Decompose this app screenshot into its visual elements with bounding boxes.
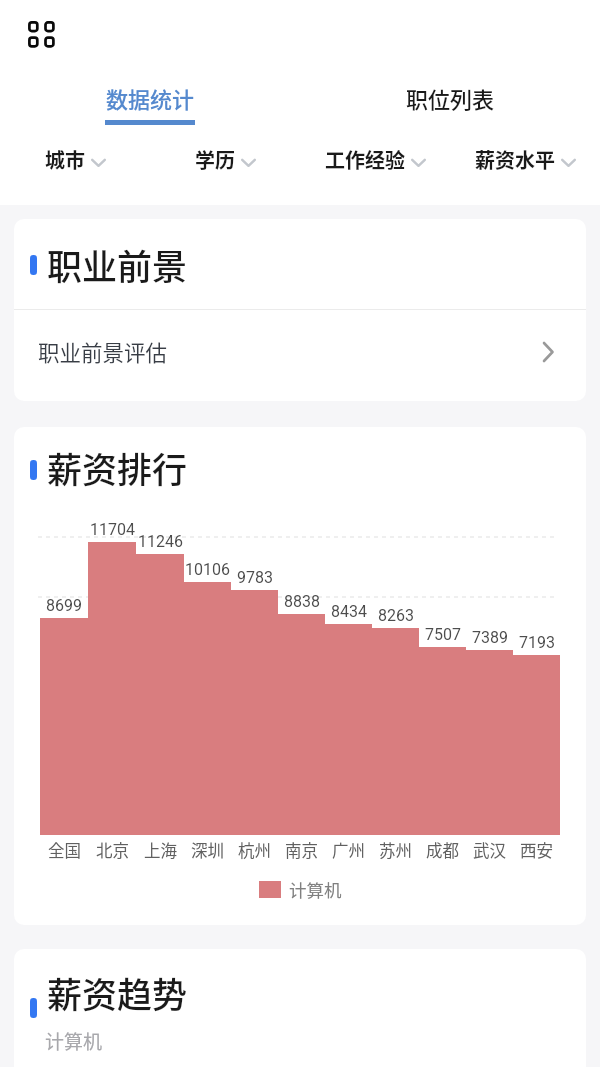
button[interactable]: 职位列表	[300, 70, 600, 125]
staticText: 苏州	[379, 838, 412, 862]
staticText: 10106	[185, 560, 230, 579]
button[interactable]: 学历	[195, 125, 256, 189]
staticText: 广州	[332, 838, 365, 862]
staticText: 薪资水平	[475, 145, 555, 174]
button[interactable]: 数据统计	[0, 70, 300, 125]
staticText: 计算机	[289, 877, 342, 902]
button[interactable]: 计算机	[14, 877, 586, 902]
staticText: 11704	[90, 520, 135, 539]
staticText: 南京	[285, 838, 318, 862]
staticText: 薪资趋势	[47, 967, 188, 1018]
staticText: 8263	[378, 606, 414, 625]
staticText: 职业前景	[47, 239, 188, 290]
staticText: 工作经验	[325, 145, 405, 174]
staticText: 深圳	[191, 838, 224, 862]
staticText: 成都	[426, 838, 459, 862]
staticText: 职位列表	[406, 82, 495, 114]
staticText: 11246	[138, 532, 183, 551]
staticText: 杭州	[238, 838, 271, 862]
staticText: 7389	[472, 628, 508, 647]
button[interactable]: 城市	[45, 125, 106, 189]
staticText: 计算机	[45, 1027, 103, 1055]
button[interactable]: 薪资水平	[475, 125, 576, 189]
staticText: 7193	[519, 633, 555, 652]
staticText: 8699	[46, 596, 82, 615]
staticText: 职业前景评估	[38, 336, 168, 367]
staticText: 武汉	[473, 838, 506, 862]
staticText: 9783	[237, 568, 273, 587]
staticText: 西安	[520, 838, 553, 862]
button[interactable]: 工作经验	[325, 125, 426, 189]
staticText: 北京	[96, 838, 129, 862]
staticText: 上海	[144, 838, 177, 862]
button[interactable]	[28, 21, 56, 49]
staticText: 8434	[331, 602, 367, 621]
staticText: 薪资排行	[47, 442, 188, 493]
staticText: 8838	[284, 592, 320, 611]
staticText: 7507	[425, 625, 461, 644]
staticText: 数据统计	[106, 82, 195, 114]
staticText: 全国	[48, 838, 81, 862]
button[interactable]: 职业前景评估	[14, 310, 586, 393]
staticText: 学历	[195, 145, 235, 174]
staticText: 城市	[45, 145, 85, 174]
